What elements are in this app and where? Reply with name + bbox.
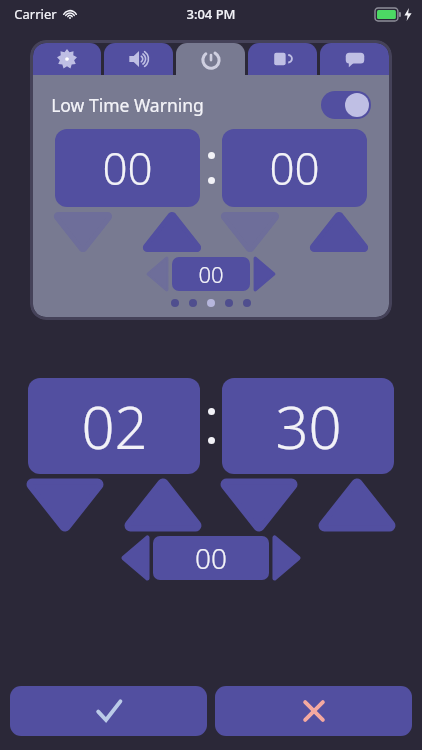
staticText: 3:04 PM	[186, 5, 236, 23]
button[interactable]: Sound	[104, 43, 173, 75]
button[interactable]: Confirm	[10, 686, 207, 736]
button[interactable]: Decrease Hours	[55, 213, 111, 251]
button[interactable]: 00	[55, 129, 200, 207]
button[interactable]: Decrease Minutes	[222, 480, 296, 530]
button[interactable]: Low Time Warning	[51, 91, 371, 119]
button[interactable]: 02	[28, 378, 200, 474]
staticText: 30	[275, 387, 342, 466]
staticText: 00	[198, 259, 224, 289]
button[interactable]: Decrease Minutes	[222, 213, 278, 251]
button[interactable]: Break	[248, 43, 317, 75]
button[interactable]: Timer	[176, 43, 245, 75]
button[interactable]: 00	[172, 257, 250, 291]
button[interactable]: Decrease Hours	[28, 480, 102, 530]
button[interactable]: Low Time Warning toggle	[321, 91, 371, 119]
button[interactable]: Increase Hours	[126, 480, 200, 530]
staticText: 00	[269, 138, 320, 198]
button[interactable]: Decrease seconds	[147, 257, 168, 291]
button[interactable]: 30	[222, 378, 394, 474]
staticText: 02	[81, 387, 148, 466]
staticText: 00	[195, 539, 227, 577]
button[interactable]: 00	[222, 129, 367, 207]
staticText: 00	[102, 138, 153, 198]
button[interactable]: Increase seconds	[254, 257, 275, 291]
button[interactable]: Settings	[33, 43, 101, 75]
button[interactable]: 00	[153, 536, 269, 580]
button[interactable]: Messages	[320, 43, 389, 75]
button[interactable]: Increase Minutes	[311, 213, 367, 251]
button[interactable]: Increase Hours	[144, 213, 200, 251]
button[interactable]: Cancel	[215, 686, 412, 736]
button[interactable]: Increase seconds	[273, 536, 300, 580]
button[interactable]: Increase Minutes	[320, 480, 394, 530]
staticText: Low Time Warning	[51, 93, 204, 117]
staticText: Carrier	[14, 5, 57, 23]
button[interactable]: Decrease seconds	[122, 536, 149, 580]
